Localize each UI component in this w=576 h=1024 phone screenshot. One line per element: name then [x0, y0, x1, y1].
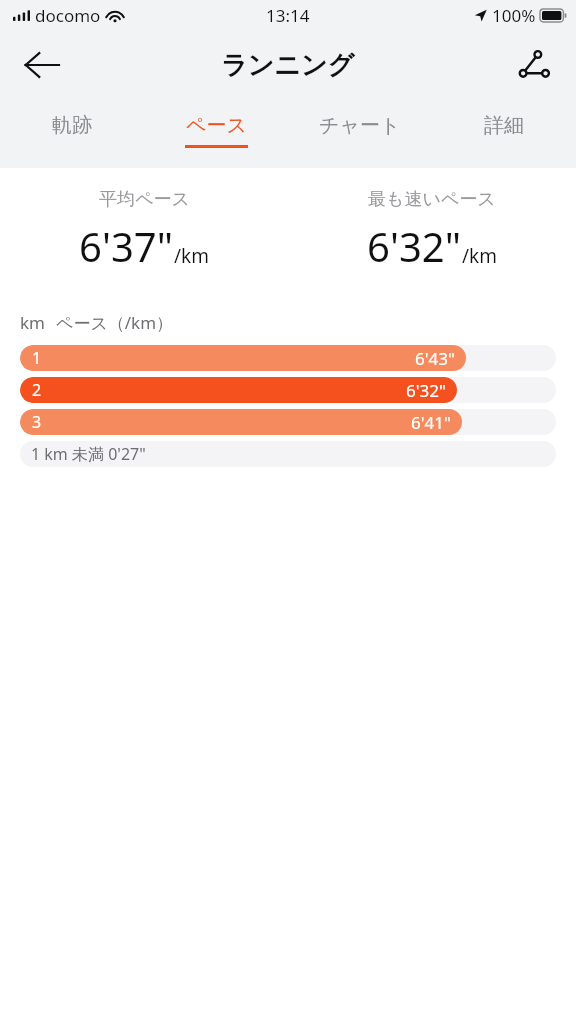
- staticText: ペース: [186, 113, 247, 138]
- staticText: 平均ペース: [99, 188, 190, 211]
- button[interactable]: Back: [14, 37, 70, 93]
- button[interactable]: 1: [20, 345, 556, 371]
- staticText: 6'43": [415, 347, 455, 370]
- staticText: 6'32": [367, 219, 461, 273]
- staticText: 6'41": [411, 411, 451, 434]
- button[interactable]: 3: [20, 409, 556, 435]
- staticText: 軌跡: [52, 113, 92, 138]
- staticText: 1: [32, 347, 42, 369]
- staticText: /km: [174, 243, 209, 269]
- button[interactable]: 詳細: [432, 100, 576, 168]
- button[interactable]: 1 km 未満 0'27": [20, 441, 556, 467]
- staticText: 最も速いペース: [368, 188, 496, 211]
- staticText: 6'32": [406, 379, 446, 402]
- staticText: 6'37": [79, 219, 173, 273]
- staticText: 13:14: [266, 4, 310, 27]
- staticText: 詳細: [484, 113, 524, 138]
- staticText: /km: [462, 243, 497, 269]
- staticText: チャート: [319, 113, 401, 138]
- staticText: 1 km 未満 0'27": [31, 443, 146, 465]
- staticText: ペース（/km）: [56, 311, 174, 334]
- staticText: km: [20, 311, 45, 334]
- button[interactable]: 軌跡: [0, 100, 144, 168]
- staticText: 2: [32, 379, 42, 401]
- staticText: ランニング: [221, 49, 355, 82]
- button[interactable]: Share: [506, 37, 562, 93]
- button[interactable]: チャート: [288, 100, 432, 168]
- staticText: 3: [32, 411, 42, 433]
- button[interactable]: ペース: [144, 100, 288, 168]
- button[interactable]: 2: [20, 377, 556, 403]
- staticText: docomo: [35, 4, 101, 27]
- staticText: 100%: [492, 4, 536, 27]
